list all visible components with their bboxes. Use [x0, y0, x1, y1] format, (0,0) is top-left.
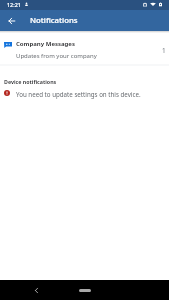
button[interactable]: Home — [72, 283, 98, 297]
staticText: You need to update settings on this devi… — [16, 90, 141, 98]
staticText: Company Messages — [16, 40, 75, 48]
staticText: Device notifications — [4, 78, 57, 85]
button[interactable]: You need to update settings on this devi… — [0, 84, 169, 102]
button[interactable]: Back — [3, 12, 20, 29]
button[interactable]: Company Messages — [0, 33, 169, 64]
staticText: 12:21 — [7, 1, 21, 8]
staticText: 1 — [162, 46, 166, 55]
button[interactable]: Back — [29, 283, 43, 297]
staticText: Updates from your company — [16, 52, 97, 60]
staticText: Notifications — [30, 15, 78, 26]
